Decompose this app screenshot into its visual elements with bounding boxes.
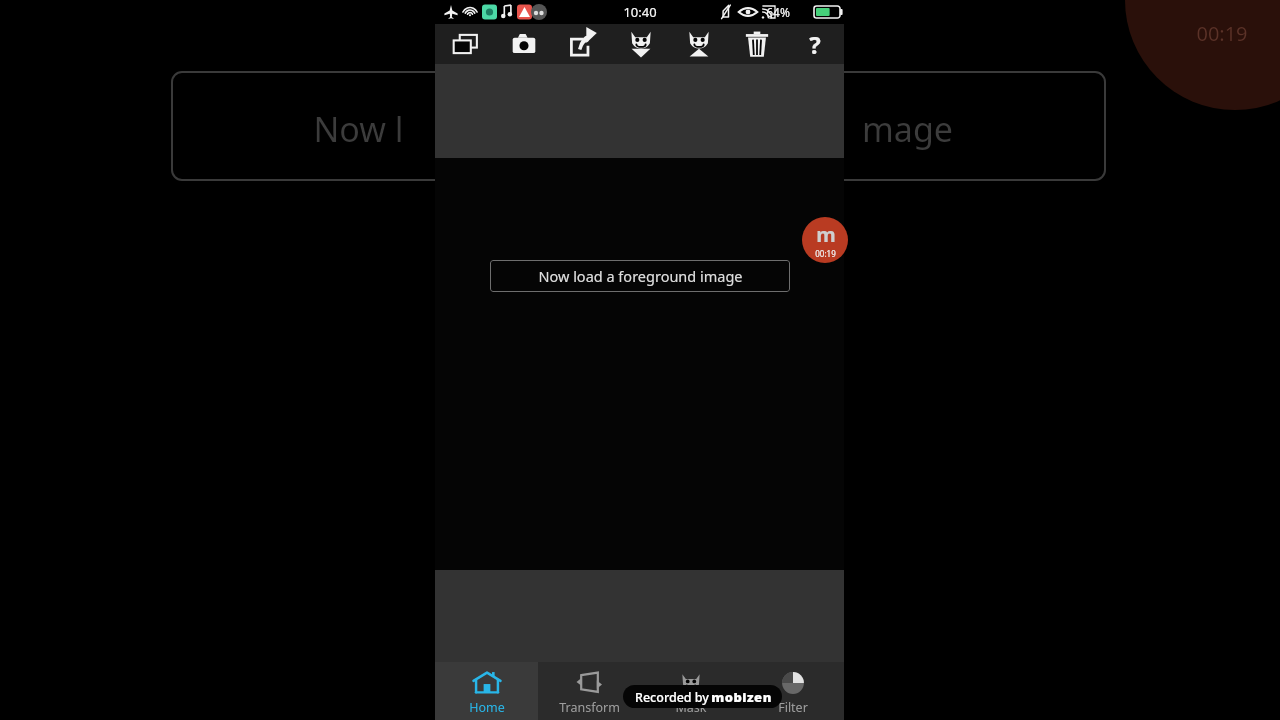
staticText: ?	[809, 28, 821, 61]
staticText: m	[816, 221, 836, 248]
other: Mobizen recorder	[802, 217, 848, 263]
staticText: 64%	[766, 4, 790, 20]
staticText: Recorded by	[633, 689, 711, 706]
staticText: mage	[862, 106, 953, 152]
button[interactable]: Save mask	[670, 24, 728, 64]
staticText: 00:19	[1196, 20, 1248, 47]
button[interactable]: Home	[435, 662, 538, 720]
staticText: 10:40	[623, 3, 657, 21]
button[interactable]: Help	[786, 24, 844, 64]
staticText: Transform	[559, 699, 620, 716]
staticText: 00:19	[815, 248, 836, 259]
staticText: Mask	[675, 699, 707, 716]
button[interactable]: Camera	[494, 24, 553, 64]
button[interactable]: Layers	[435, 24, 494, 64]
staticText: Filter	[778, 699, 808, 716]
button[interactable]: Delete	[728, 24, 786, 64]
button[interactable]: Mask	[640, 662, 742, 720]
button[interactable]: Now load a foreground image	[490, 260, 790, 292]
button[interactable]: Transform	[538, 662, 640, 720]
staticText: Now load a foreground image	[538, 266, 743, 286]
button[interactable]: Load mask	[612, 24, 670, 64]
button[interactable]: Filter	[742, 662, 844, 720]
staticText: Home	[469, 699, 505, 716]
button[interactable]: Share	[553, 24, 612, 64]
staticText: Now l	[313, 106, 404, 152]
staticText: mobizen	[711, 688, 772, 706]
